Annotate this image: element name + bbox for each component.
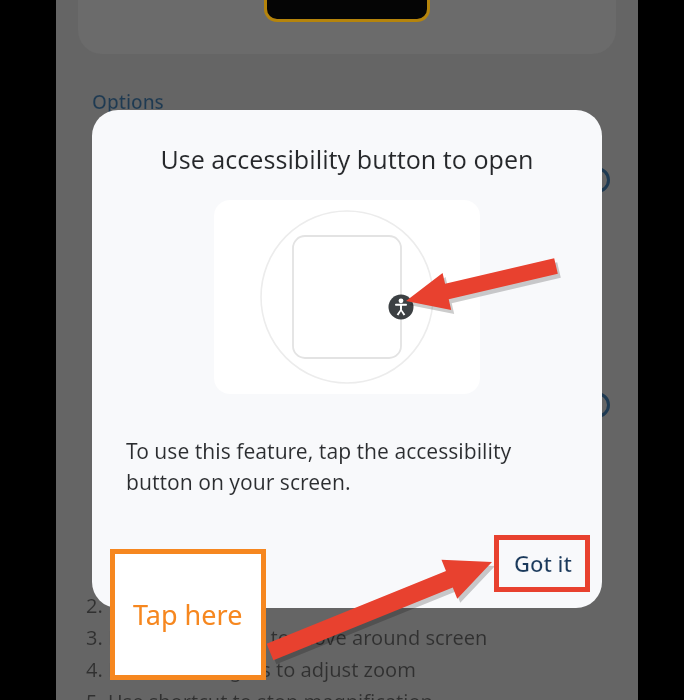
button[interactable]: Got it	[496, 537, 590, 589]
staticText: Options	[92, 89, 164, 115]
button[interactable]: Option	[584, 167, 610, 193]
staticText: To use this feature, tap the accessibili…	[126, 437, 512, 496]
staticText: Use accessibility button to open	[92, 142, 602, 182]
button[interactable]: Option	[584, 392, 610, 418]
staticText: 4. Pinch two fingers to adjust zoom	[86, 656, 416, 683]
staticText: 3. Drag two fingers to move around scree…	[86, 624, 488, 651]
staticText: 2.	[86, 592, 103, 619]
staticText: 5. Use shortcut to stop magnification	[86, 688, 433, 700]
staticText: Tap here	[133, 596, 243, 633]
staticText: Got it	[514, 548, 572, 578]
